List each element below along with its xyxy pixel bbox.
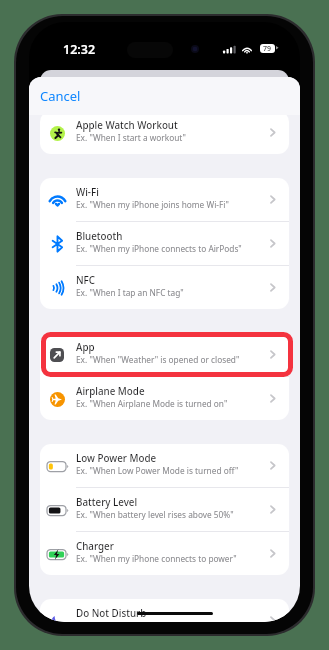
staticText: App bbox=[76, 341, 95, 354]
staticText: Cancel bbox=[40, 87, 81, 105]
staticText: Ex. "When my iPhone joins home Wi-Fi" bbox=[76, 199, 229, 210]
staticText: 79 bbox=[263, 44, 272, 53]
staticText: Airplane Mode bbox=[76, 385, 145, 398]
button[interactable]: Charger bbox=[40, 532, 289, 575]
staticText: Ex. "When Airplane Mode is turned on" bbox=[76, 398, 228, 409]
button[interactable]: Apple Watch Workout bbox=[40, 115, 289, 154]
staticText: Ex. "When Low Power Mode is turned off" bbox=[76, 465, 239, 476]
staticText: Charger bbox=[76, 540, 114, 553]
staticText: Ex. "When "Weather" is opened or closed" bbox=[76, 354, 240, 365]
button[interactable]: NFC bbox=[40, 266, 289, 309]
staticText: NFC bbox=[76, 274, 95, 287]
staticText: Apple Watch Workout bbox=[76, 119, 178, 132]
staticText: Ex. "When I tap an NFC tag" bbox=[76, 287, 184, 298]
staticText: Do Not Disturb bbox=[76, 607, 147, 620]
staticText: Ex. "When I start a workout" bbox=[76, 132, 186, 143]
staticText: Wi-Fi bbox=[76, 186, 99, 199]
button[interactable]: Bluetooth bbox=[40, 222, 289, 265]
staticText: Ex. "When my iPhone connects to AirPods" bbox=[76, 243, 242, 254]
staticText: Bluetooth bbox=[76, 230, 123, 243]
staticText: Ex. "When battery level rises above 50%" bbox=[76, 509, 234, 520]
button[interactable]: Wi-Fi bbox=[40, 178, 289, 221]
button[interactable]: Airplane Mode bbox=[40, 377, 289, 420]
button[interactable]: Low Power Mode bbox=[40, 444, 289, 487]
staticText: 12:32 bbox=[63, 41, 96, 58]
staticText: Low Power Mode bbox=[76, 452, 157, 465]
button[interactable]: Battery Level bbox=[40, 488, 289, 531]
button[interactable]: App bbox=[40, 333, 289, 376]
button[interactable]: Cancel bbox=[35, 83, 86, 109]
staticText: Ex. "When my iPhone connects to power" bbox=[76, 553, 237, 564]
button[interactable]: Do Not Disturb bbox=[40, 599, 289, 622]
staticText: Battery Level bbox=[76, 496, 138, 509]
